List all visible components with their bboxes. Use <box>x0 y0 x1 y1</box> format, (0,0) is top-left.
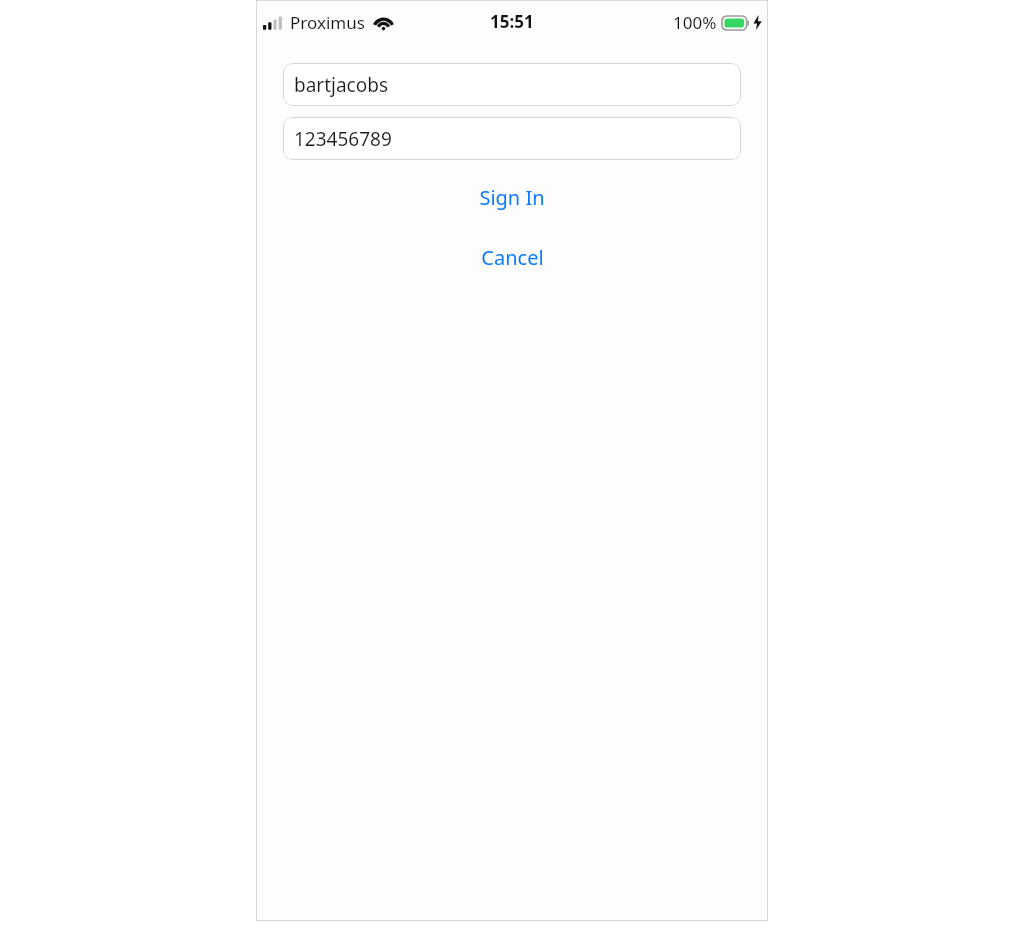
staticText: 15:51 <box>490 10 534 33</box>
staticText: bartjacobs <box>294 72 389 98</box>
staticText: Proximus <box>290 11 365 34</box>
button[interactable]: Cancel <box>256 242 768 272</box>
staticText: Cancel <box>481 244 544 271</box>
staticText: 100% <box>673 11 717 34</box>
button[interactable]: bartjacobs <box>283 63 741 106</box>
staticText: Sign In <box>479 184 545 211</box>
button[interactable]: 123456789 <box>283 117 741 160</box>
staticText: 123456789 <box>294 126 392 152</box>
button[interactable]: Sign In <box>256 182 768 212</box>
